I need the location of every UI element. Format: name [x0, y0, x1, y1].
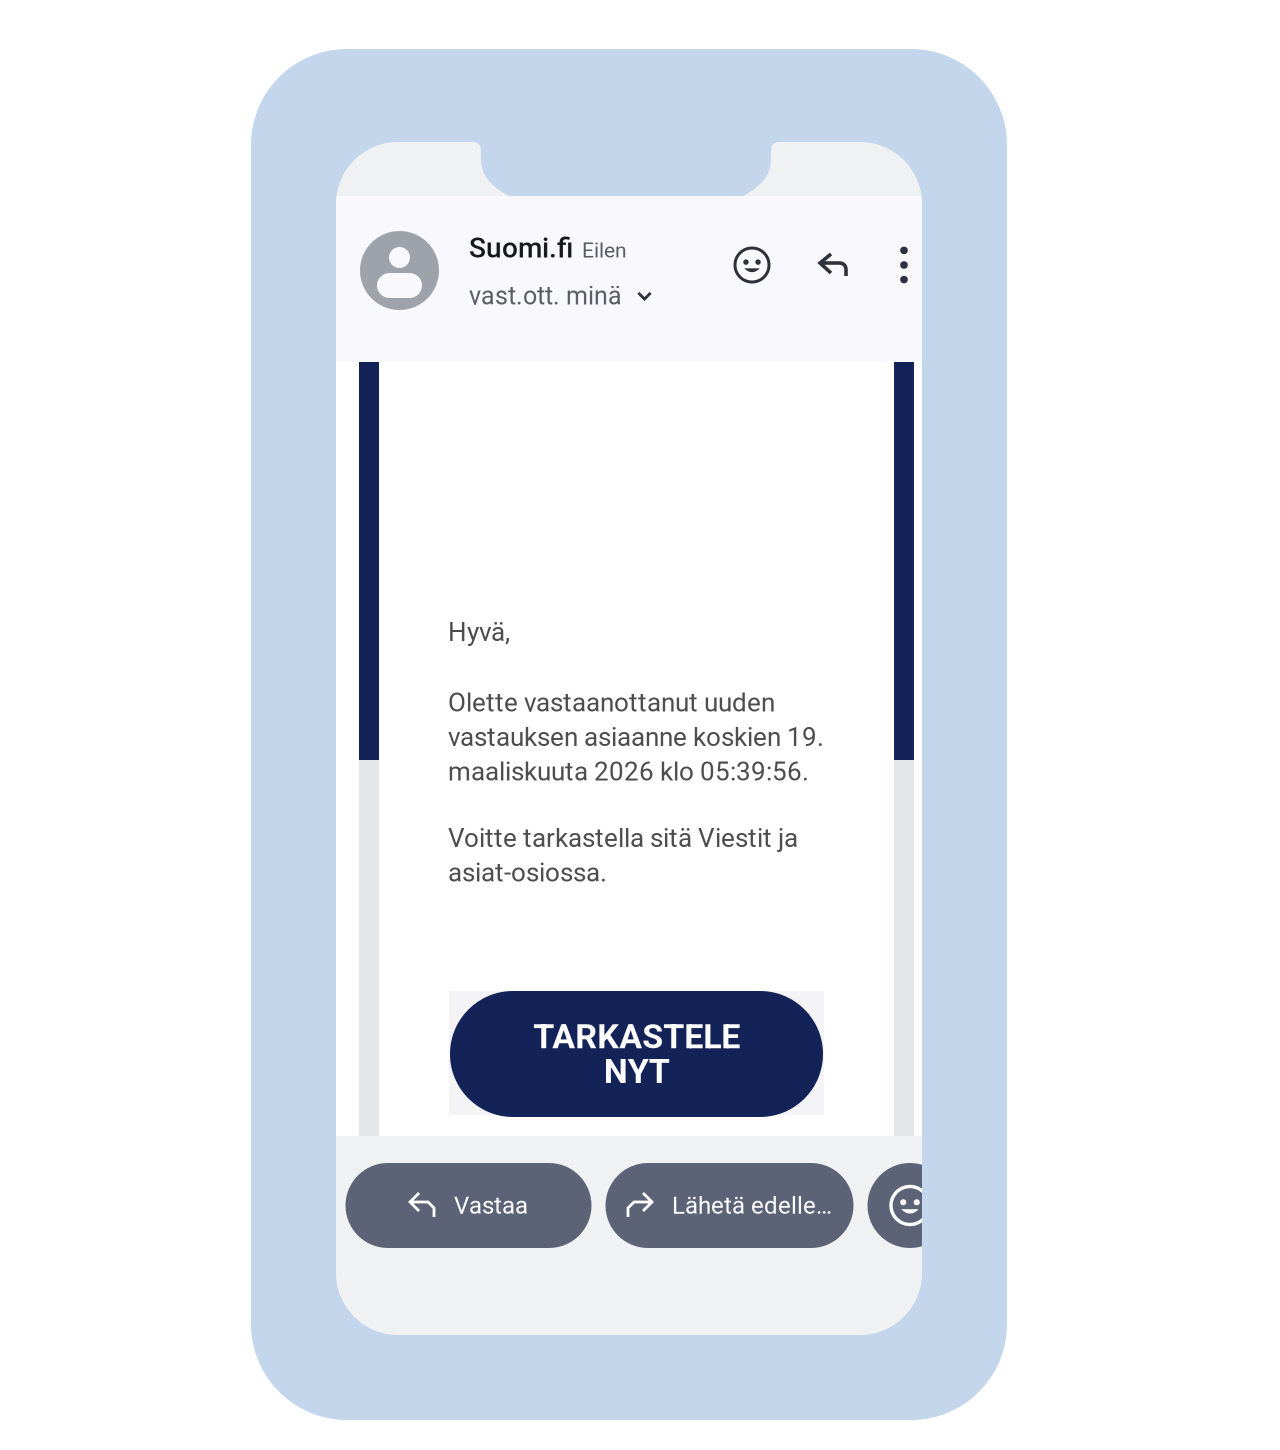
staticText: Eilen — [582, 238, 627, 263]
staticText: Voitte tarkastella sitä Viestit ja asiat… — [448, 823, 798, 888]
button[interactable]: Add reaction — [726, 239, 778, 291]
staticText: vast.ott. minä — [469, 281, 622, 311]
staticText: Suomi.fi — [469, 232, 573, 264]
staticText: Lähetä edelle… — [672, 1191, 832, 1219]
staticText: Vastaa — [454, 1191, 528, 1219]
staticText: Hyvä, — [448, 617, 510, 647]
button[interactable]: Reply — [807, 239, 859, 291]
button[interactable]: Emoji reply — [867, 1163, 952, 1248]
button[interactable]: Lähetä edelle… — [605, 1163, 853, 1248]
staticText: TARKASTELE NYT — [533, 1017, 740, 1091]
staticText: Olette vastaanottanut uuden vastauksen a… — [448, 687, 824, 787]
button[interactable]: More options — [882, 239, 926, 291]
button[interactable]: Vastaa — [345, 1163, 591, 1248]
button[interactable]: TARKASTELE NYT — [450, 991, 823, 1117]
